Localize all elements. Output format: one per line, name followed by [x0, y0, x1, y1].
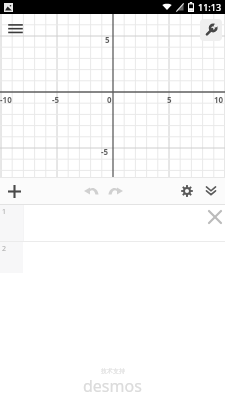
staticText: 5 — [167, 94, 172, 105]
staticText: 0 — [107, 94, 112, 105]
button[interactable]: 2 — [0, 242, 225, 273]
staticText: 技术支持 — [101, 367, 125, 375]
button[interactable]: 1 — [0, 205, 225, 241]
button[interactable]: Redo — [103, 179, 127, 203]
button[interactable]: Collapse keypad — [199, 179, 223, 203]
button[interactable]: Add expression — [2, 179, 26, 203]
staticText: 2 — [2, 244, 7, 254]
staticText: 11:13 — [198, 1, 222, 13]
staticText: -10 — [0, 94, 12, 105]
staticText: 1 — [2, 207, 7, 217]
button[interactable]: Clear expression — [205, 207, 225, 227]
button[interactable]: Settings — [175, 179, 199, 203]
button[interactable]: Menu — [3, 15, 27, 39]
staticText: -5 — [52, 94, 60, 105]
staticText: desmos — [83, 375, 142, 397]
staticText: 10 — [214, 94, 224, 105]
staticText: 5 — [105, 34, 110, 45]
staticText: -5 — [101, 146, 109, 157]
button[interactable]: Undo — [79, 179, 103, 203]
button[interactable]: Graph settings — [200, 19, 222, 41]
